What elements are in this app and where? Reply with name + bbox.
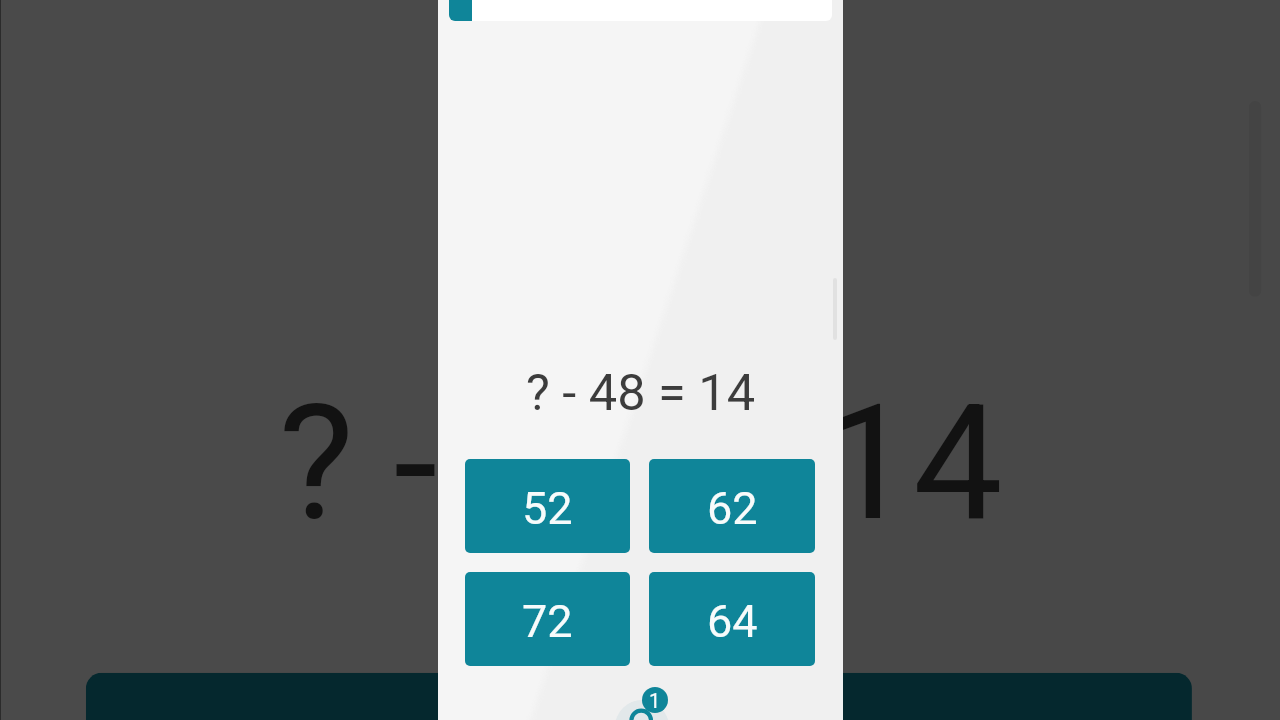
button[interactable]	[449, 0, 832, 21]
staticText: 72	[522, 595, 573, 648]
button[interactable]: Notifications: 1	[642, 687, 668, 713]
staticText: 62	[707, 482, 758, 535]
staticText: ? - 48 = 14	[1, 369, 1280, 556]
button[interactable]: 72	[465, 572, 630, 666]
staticText: 52	[522, 482, 573, 535]
button[interactable]: 52	[465, 459, 630, 553]
button[interactable]: 52	[86, 673, 607, 720]
button[interactable]: 64	[649, 572, 815, 666]
button[interactable]: Profile	[615, 700, 669, 720]
staticText: ? - 48 = 14	[438, 363, 843, 422]
staticText: 1	[649, 689, 661, 712]
button[interactable]: 62	[667, 673, 1192, 720]
staticText: 64	[707, 595, 758, 648]
button[interactable]: 62	[649, 459, 815, 553]
